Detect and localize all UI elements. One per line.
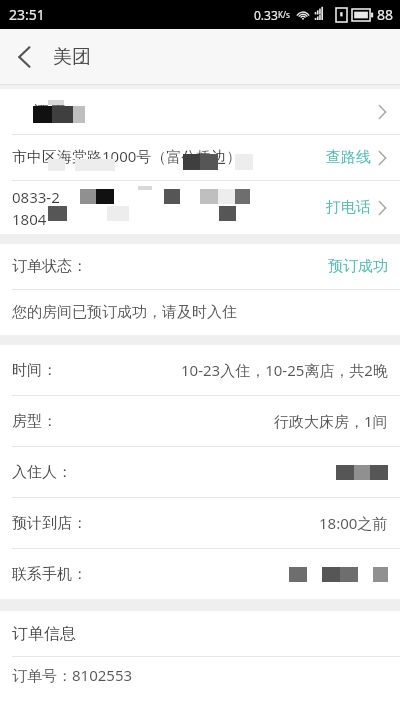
staticText: 1804 — [12, 209, 47, 229]
staticText: 房型： — [12, 412, 57, 431]
staticText: 0.33 — [254, 7, 278, 23]
button[interactable]: 入住人： — [0, 447, 400, 497]
button[interactable]: Back — [0, 29, 48, 84]
staticText: 预订成功 — [328, 257, 388, 276]
button[interactable]: 时间： — [0, 345, 400, 395]
staticText: 订单信息 — [12, 624, 76, 644]
button[interactable]: 酒店 — [0, 89, 400, 134]
staticText: 预计到店： — [12, 514, 87, 533]
staticText: 打电话 — [326, 198, 371, 217]
staticText: 酒店 — [33, 102, 65, 122]
staticText: 88 — [377, 5, 394, 24]
staticText: 联系手机： — [12, 565, 87, 584]
staticText: K/s — [278, 9, 290, 20]
staticText: 行政大床房，1间 — [274, 411, 388, 431]
staticText: 0833-2 — [12, 187, 60, 207]
staticText: 时间： — [12, 361, 57, 380]
staticText: 查路线 — [326, 148, 371, 167]
staticText: 订单号：8102553 — [12, 665, 133, 685]
staticText: 18:00之前 — [319, 513, 388, 533]
button[interactable]: 房型： — [0, 396, 400, 446]
button[interactable]: 0833-2 — [0, 181, 400, 234]
button[interactable]: 联系手机： — [0, 549, 400, 599]
staticText: 23:51 — [9, 5, 45, 24]
button[interactable]: 预计到店： — [0, 498, 400, 548]
staticText: 您的房间已预订成功，请及时入住 — [12, 303, 237, 322]
button[interactable]: 市中区海棠路1000号（富公桥边） — [0, 135, 400, 180]
button[interactable]: 订单状态： — [0, 244, 400, 289]
staticText: 市中区海棠路1000号（富公桥边） — [12, 146, 242, 166]
staticText: 入住人： — [12, 463, 72, 482]
staticText: 美团 — [53, 45, 91, 69]
staticText: 订单状态： — [12, 257, 87, 276]
staticText: 10-23入住，10-25离店，共2晚 — [181, 360, 388, 380]
